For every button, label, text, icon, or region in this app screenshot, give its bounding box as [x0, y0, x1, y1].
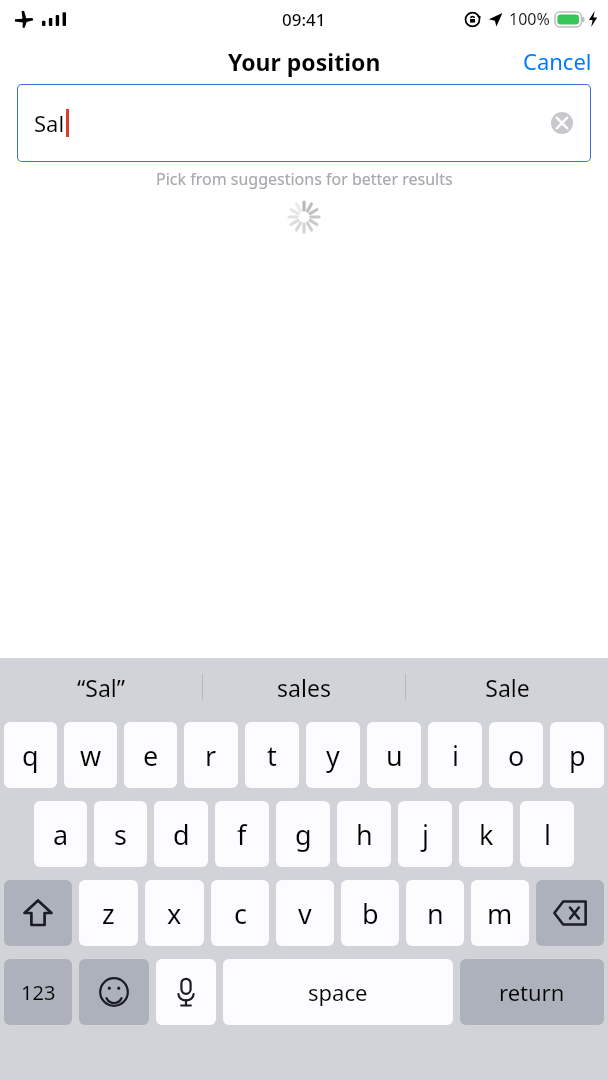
button[interactable]: f — [215, 801, 269, 867]
staticText: c — [234, 895, 247, 932]
button[interactable]: z — [79, 880, 138, 946]
staticText: m — [487, 895, 513, 932]
button[interactable]: r — [184, 722, 238, 788]
button[interactable]: c — [211, 880, 269, 946]
button[interactable]: h — [337, 801, 391, 867]
button[interactable]: u — [367, 722, 421, 788]
staticText: y — [326, 737, 340, 774]
button[interactable]: i — [428, 722, 482, 788]
staticText: s — [114, 816, 127, 853]
button[interactable]: w — [64, 722, 117, 788]
staticText: p — [569, 737, 586, 774]
button[interactable]: Sal — [17, 84, 591, 162]
button[interactable]: n — [406, 880, 464, 946]
staticText: k — [479, 816, 494, 853]
staticText: t — [267, 737, 277, 774]
staticText: 09:41 — [282, 8, 326, 31]
staticText: u — [386, 737, 403, 774]
staticText: i — [452, 737, 459, 774]
staticText: l — [544, 816, 551, 853]
button[interactable]: e — [124, 722, 177, 788]
button[interactable]: “Sal” — [0, 658, 202, 716]
button[interactable]: s — [94, 801, 147, 867]
button[interactable]: p — [550, 722, 604, 788]
staticText: Cancel — [523, 46, 592, 76]
staticText: Pick from suggestions for better results — [156, 168, 453, 190]
staticText: a — [53, 816, 69, 853]
staticText: 123 — [21, 979, 56, 1006]
staticText: 100% — [509, 8, 550, 30]
button[interactable]: 123 — [4, 959, 72, 1025]
button[interactable]: space — [223, 959, 453, 1025]
button[interactable]: return — [460, 959, 604, 1025]
button[interactable]: Cancel — [507, 40, 608, 82]
staticText: f — [237, 816, 247, 853]
button[interactable]: t — [245, 722, 299, 788]
staticText: x — [167, 895, 182, 932]
staticText: space — [308, 977, 368, 1007]
button[interactable]: v — [276, 880, 334, 946]
button[interactable]: Sale — [406, 658, 608, 716]
staticText: h — [356, 816, 373, 853]
button[interactable]: sales — [203, 658, 405, 716]
button[interactable]: l — [520, 801, 574, 867]
staticText: z — [102, 895, 115, 932]
staticText: v — [298, 895, 312, 932]
staticText: Your position — [228, 46, 381, 77]
staticText: j — [422, 816, 429, 853]
staticText: b — [362, 895, 379, 932]
staticText: n — [427, 895, 444, 932]
button[interactable]: y — [306, 722, 360, 788]
button[interactable]: g — [276, 801, 330, 867]
button[interactable]: Shift — [4, 880, 72, 946]
staticText: o — [508, 737, 525, 774]
staticText: q — [22, 737, 39, 774]
button[interactable]: d — [154, 801, 208, 867]
button[interactable]: Emoji — [79, 959, 149, 1025]
button[interactable]: j — [398, 801, 452, 867]
staticText: “Sal” — [77, 672, 125, 703]
staticText: Sale — [485, 672, 530, 703]
staticText: return — [499, 977, 565, 1007]
staticText: e — [143, 737, 159, 774]
staticText: r — [205, 737, 217, 774]
button[interactable]: a — [34, 801, 87, 867]
button[interactable]: b — [341, 880, 399, 946]
button[interactable]: Clear text — [545, 106, 579, 140]
button[interactable]: k — [459, 801, 513, 867]
button[interactable]: o — [489, 722, 543, 788]
staticText: g — [295, 816, 312, 853]
button[interactable]: q — [4, 722, 57, 788]
button[interactable]: x — [145, 880, 204, 946]
button[interactable]: Backspace — [536, 880, 604, 946]
button[interactable]: Dictation — [156, 959, 216, 1025]
staticText: sales — [277, 672, 331, 703]
button[interactable]: m — [471, 880, 529, 946]
staticText: Sal — [34, 108, 65, 138]
staticText: d — [173, 816, 190, 853]
staticText: w — [80, 737, 102, 774]
